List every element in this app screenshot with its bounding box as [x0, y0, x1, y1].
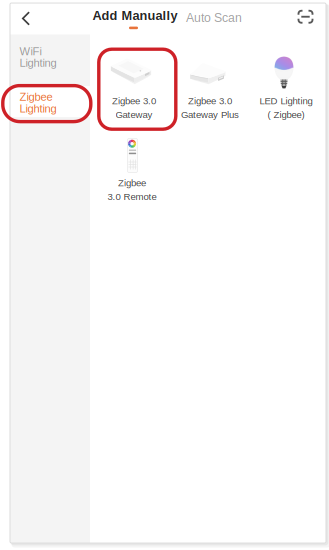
- staticText: Auto Scan: [186, 11, 242, 25]
- staticText: Gateway: [115, 109, 152, 120]
- button[interactable]: Zigbee 3.0: [96, 53, 172, 135]
- staticText: Zigbee: [118, 177, 146, 188]
- staticText: ( Zigbee): [267, 109, 304, 120]
- staticText: 3.0 Remote: [107, 191, 156, 202]
- staticText: Gateway Plus: [181, 109, 239, 120]
- staticText: Zigbee 3.0: [112, 95, 156, 106]
- staticText: WiFi: [19, 45, 41, 57]
- button[interactable]: Auto Scan: [179, 3, 249, 34]
- button[interactable]: Add Manually: [89, 3, 181, 34]
- staticText: Zigbee 3.0: [188, 95, 232, 106]
- staticText: Zigbee: [19, 91, 52, 103]
- staticText: Add Manually: [92, 8, 177, 23]
- staticText: Lighting: [19, 57, 56, 69]
- button[interactable]: Zigbee 3.0: [172, 53, 248, 135]
- button[interactable]: LED Lighting: [248, 53, 324, 135]
- staticText: Lighting: [19, 102, 56, 115]
- button[interactable]: WiFi: [10, 40, 90, 71]
- staticText: LED Lighting: [259, 95, 312, 106]
- button[interactable]: Zigbee: [94, 135, 170, 217]
- button[interactable]: Scan QR code: [289, 1, 321, 32]
- button[interactable]: Back: [11, 3, 41, 34]
- button[interactable]: Zigbee: [10, 86, 90, 117]
